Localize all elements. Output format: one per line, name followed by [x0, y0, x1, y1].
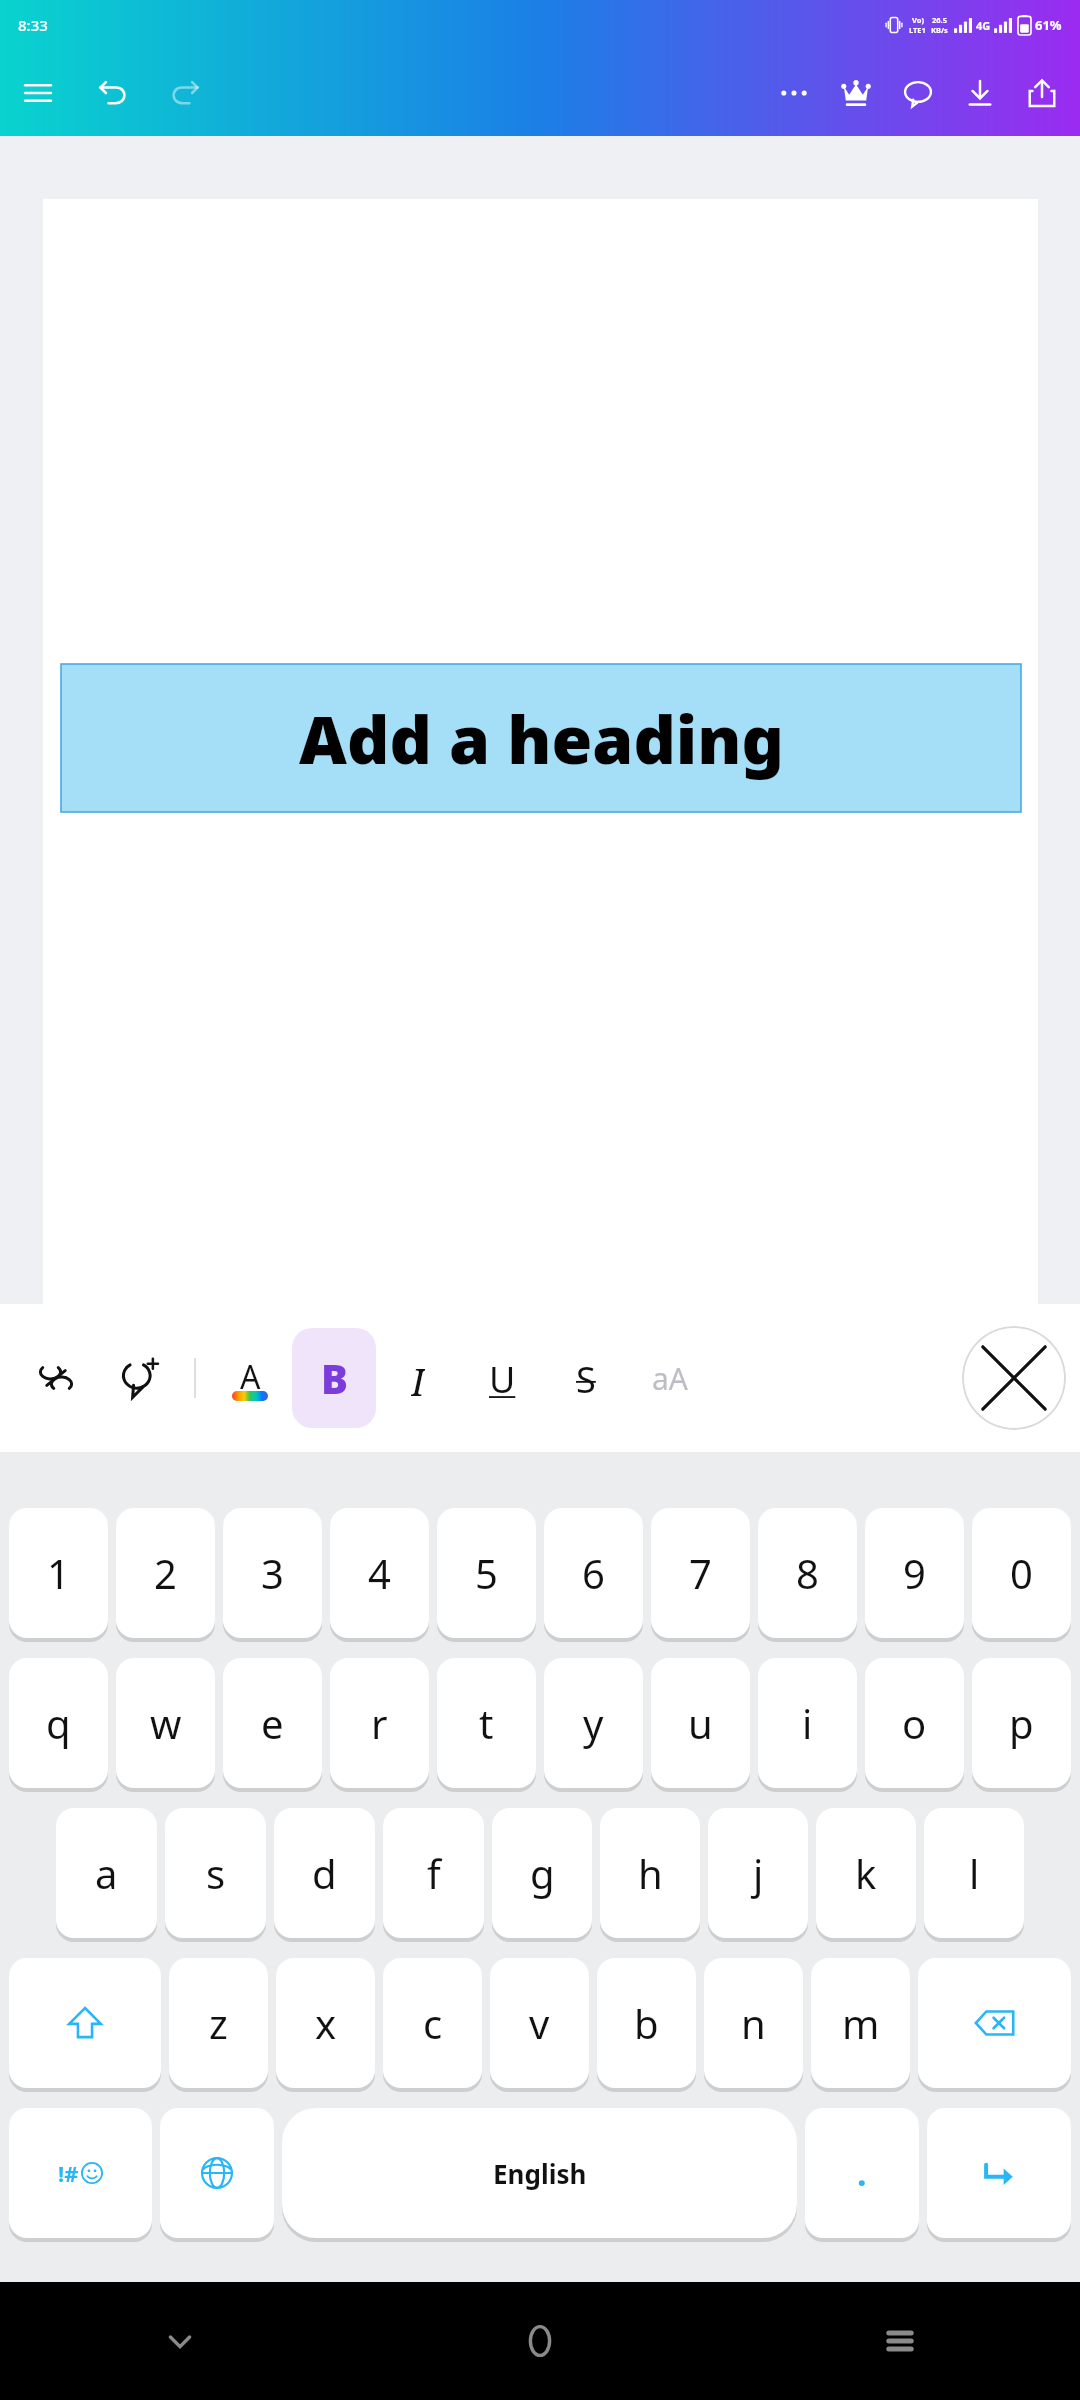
staticText: c [423, 1996, 443, 2050]
button[interactable]: Symbols [9, 2108, 152, 2238]
button[interactable]: 5 [437, 1508, 536, 1638]
staticText: . [857, 2150, 867, 2196]
button[interactable]: x [276, 1958, 375, 2088]
staticText: u [688, 1696, 713, 1750]
button[interactable]: Hide keyboard [0, 2282, 360, 2400]
staticText: h [638, 1846, 663, 1900]
button[interactable]: 2 [116, 1508, 215, 1638]
button[interactable]: k [816, 1808, 916, 1938]
button[interactable]: Comments [892, 67, 944, 119]
button[interactable]: Redo [160, 67, 212, 119]
staticText: 8 [796, 1546, 819, 1600]
button[interactable]: f [383, 1808, 484, 1938]
button[interactable]: Add a heading [61, 664, 1021, 812]
staticText: 5 [475, 1546, 498, 1600]
button[interactable]: b [597, 1958, 696, 2088]
button[interactable]: Period [805, 2108, 919, 2238]
button[interactable]: Menu [12, 67, 64, 119]
staticText: S [576, 1355, 596, 1401]
staticText: 7 [689, 1546, 712, 1600]
button[interactable]: v [490, 1958, 589, 2088]
button[interactable]: Enter [927, 2108, 1071, 2238]
button[interactable]: e [223, 1658, 322, 1788]
button[interactable]: m [811, 1958, 910, 2088]
staticText: aA [652, 1358, 688, 1399]
button[interactable]: l [924, 1808, 1024, 1938]
button[interactable]: z [169, 1958, 268, 2088]
button[interactable]: o [865, 1658, 964, 1788]
staticText: !# [58, 2158, 79, 2188]
staticText: s [206, 1846, 226, 1900]
button[interactable]: Add comment [98, 1328, 182, 1428]
staticText: r [371, 1696, 388, 1750]
button[interactable]: Underline [460, 1328, 544, 1428]
button[interactable]: g [492, 1808, 592, 1938]
staticText: U [489, 1355, 516, 1401]
button[interactable]: More options [768, 67, 820, 119]
button[interactable]: j [708, 1808, 808, 1938]
button[interactable]: Recents [720, 2282, 1080, 2400]
button[interactable]: 6 [544, 1508, 643, 1638]
button[interactable]: Space [282, 2108, 797, 2238]
button[interactable]: 4 [330, 1508, 429, 1638]
button[interactable]: Letter case [628, 1328, 712, 1428]
staticText: w [150, 1696, 182, 1750]
button[interactable]: Strikethrough [544, 1328, 628, 1428]
button[interactable]: Language [160, 2108, 274, 2238]
button[interactable]: w [116, 1658, 215, 1788]
staticText: k [855, 1846, 877, 1900]
staticText: 1 [47, 1546, 70, 1600]
button[interactable]: u [651, 1658, 750, 1788]
button[interactable]: Share [1016, 67, 1068, 119]
button[interactable]: 0 [972, 1508, 1071, 1638]
button[interactable]: y [544, 1658, 643, 1788]
button[interactable]: q [9, 1658, 108, 1788]
button[interactable]: r [330, 1658, 429, 1788]
button[interactable]: Add a heading [43, 199, 1038, 1304]
button[interactable]: a [56, 1808, 157, 1938]
button[interactable]: B [292, 1328, 376, 1428]
staticText: a [95, 1846, 118, 1900]
button[interactable]: i [758, 1658, 857, 1788]
button[interactable]: Text color [208, 1328, 292, 1428]
staticText: j [753, 1846, 764, 1900]
button[interactable]: 1 [9, 1508, 108, 1638]
button[interactable]: Download [954, 67, 1006, 119]
staticText: x [315, 1996, 337, 2050]
button[interactable]: 8 [758, 1508, 857, 1638]
button[interactable]: Backspace [918, 1958, 1071, 2088]
staticText: d [312, 1846, 337, 1900]
staticText: 4G [976, 18, 991, 33]
button[interactable]: Link [14, 1328, 98, 1428]
button[interactable]: Shift [9, 1958, 161, 2088]
button[interactable]: p [972, 1658, 1071, 1788]
button[interactable]: n [704, 1958, 803, 2088]
button[interactable]: 3 [223, 1508, 322, 1638]
button[interactable]: d [274, 1808, 375, 1938]
staticText: f [427, 1846, 441, 1900]
staticText: 9 [903, 1546, 926, 1600]
button[interactable]: Undo [86, 67, 138, 119]
staticText: t [479, 1696, 494, 1750]
staticText: A [240, 1355, 261, 1399]
staticText: i [802, 1696, 813, 1750]
button[interactable]: s [165, 1808, 266, 1938]
button[interactable]: Close [962, 1326, 1066, 1430]
staticText: m [842, 1996, 880, 2050]
button[interactable]: 9 [865, 1508, 964, 1638]
staticText: l [969, 1846, 980, 1900]
button[interactable]: Pro [830, 67, 882, 119]
staticText: 26.5 [932, 15, 947, 25]
button[interactable]: Home [360, 2282, 720, 2400]
staticText: KB/s [931, 25, 948, 35]
staticText: 0 [1010, 1546, 1033, 1600]
button[interactable]: t [437, 1658, 536, 1788]
staticText: 8:33 [18, 15, 48, 35]
staticText: 2 [154, 1546, 177, 1600]
button[interactable]: 7 [651, 1508, 750, 1638]
button[interactable]: Italic [376, 1328, 460, 1428]
button[interactable]: h [600, 1808, 700, 1938]
staticText: b [634, 1996, 659, 2050]
button[interactable]: c [383, 1958, 482, 2088]
staticText: Vo) [912, 15, 924, 25]
